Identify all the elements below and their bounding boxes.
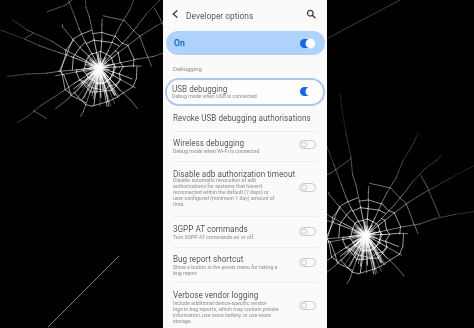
button[interactable]: Wireless debugging bbox=[163, 133, 327, 156]
staticText: reconnected within the default (7 days) … bbox=[173, 189, 269, 195]
staticText: Turn 3GPP AT commands on or off. bbox=[173, 234, 255, 240]
staticText: Debugging bbox=[173, 65, 202, 72]
staticText: Developer options bbox=[186, 11, 254, 21]
button[interactable]: Toggle off bbox=[299, 227, 316, 236]
staticText: user-configured (minimum 1 day) amount o… bbox=[173, 195, 275, 201]
staticText: Disable automatic revocation of adb bbox=[173, 177, 257, 183]
button[interactable]: 3GPP AT commands bbox=[163, 219, 327, 243]
staticText: 3GPP AT commands bbox=[173, 224, 248, 234]
button[interactable]: Toggle off bbox=[299, 301, 316, 310]
staticText: USB debugging bbox=[172, 84, 228, 94]
staticText: Verbose vendor logging bbox=[173, 290, 259, 300]
staticText: information, use more battery, or use mo… bbox=[173, 312, 271, 318]
staticText: On bbox=[174, 38, 185, 48]
button[interactable]: Back bbox=[168, 7, 182, 21]
staticText: time. bbox=[173, 201, 185, 207]
staticText: logs in bug reports, which may contain p… bbox=[173, 306, 279, 312]
button[interactable]: Revoke USB debugging authorisations bbox=[163, 109, 327, 124]
staticText: Wireless debugging bbox=[173, 138, 245, 148]
button[interactable]: Toggle off bbox=[299, 183, 316, 192]
staticText: storage. bbox=[173, 318, 192, 324]
staticText: Disable adb authorization timeout bbox=[173, 169, 296, 179]
button[interactable]: Toggle off bbox=[299, 140, 316, 149]
staticText: Bug report shortcut bbox=[173, 254, 244, 264]
button[interactable]: Verbose vendor logging bbox=[163, 285, 327, 328]
staticText: Debug mode when Wi-Fi is connected bbox=[173, 148, 260, 154]
button[interactable]: Disable adb authorization timeout bbox=[163, 164, 327, 213]
staticText: Revoke USB debugging authorisations bbox=[173, 113, 311, 123]
staticText: Show a button in the power menu for taki… bbox=[173, 264, 278, 270]
staticText: Debug mode when USB is connected bbox=[172, 93, 257, 99]
button[interactable]: Toggle on bbox=[300, 39, 315, 48]
button[interactable]: Search bbox=[304, 7, 318, 21]
staticText: Include additional device-specific vendo… bbox=[173, 300, 267, 306]
button[interactable]: On bbox=[166, 31, 325, 55]
button[interactable]: Toggle off bbox=[299, 258, 316, 267]
staticText: bug report bbox=[173, 270, 197, 276]
button[interactable]: USB debugging bbox=[167, 80, 323, 104]
button[interactable]: Toggle on bbox=[300, 87, 315, 96]
staticText: authorizations for systems that haven't bbox=[173, 183, 263, 189]
button[interactable]: Bug report shortcut bbox=[163, 249, 327, 279]
